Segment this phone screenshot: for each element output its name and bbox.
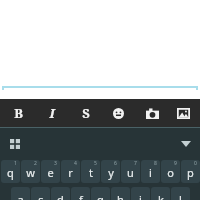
staticText: q <box>7 165 14 180</box>
staticText: 8 <box>154 160 157 167</box>
staticText: u <box>127 165 134 180</box>
button[interactable]: Take photo <box>139 100 165 126</box>
staticText: 9 <box>174 160 177 167</box>
staticText: p <box>187 165 194 180</box>
button[interactable]: k <box>151 187 170 200</box>
button[interactable]: i <box>141 160 160 183</box>
button[interactable]: g <box>91 187 110 200</box>
staticText: i <box>149 165 152 180</box>
button[interactable]: y <box>101 160 120 183</box>
staticText: 0 <box>194 160 197 167</box>
button[interactable]: More suggestions <box>173 131 199 157</box>
button[interactable]: f <box>71 187 90 200</box>
staticText: h <box>117 192 124 200</box>
staticText: k <box>158 192 164 200</box>
staticText: B <box>14 104 23 122</box>
staticText: 5 <box>94 160 97 167</box>
button[interactable]: Strikethrough <box>73 100 99 126</box>
button[interactable]: d <box>51 187 70 200</box>
button[interactable]: r <box>61 160 80 183</box>
staticText: l <box>179 192 182 200</box>
button[interactable]: l <box>171 187 190 200</box>
button[interactable]: o <box>161 160 180 183</box>
button[interactable]: Keyboard options <box>2 131 28 157</box>
staticText: f <box>79 192 83 200</box>
button[interactable]: h <box>111 187 130 200</box>
staticText: w <box>26 165 35 180</box>
button[interactable]: t <box>81 160 100 183</box>
button[interactable]: u <box>121 160 140 183</box>
button[interactable]: a <box>11 187 30 200</box>
staticText: d <box>57 192 64 200</box>
button[interactable]: j <box>131 187 150 200</box>
staticText: S <box>82 104 90 122</box>
staticText: y <box>108 165 114 180</box>
staticText: 7 <box>134 160 137 167</box>
staticText: I <box>49 104 55 122</box>
staticText: r <box>68 165 73 180</box>
staticText: o <box>167 165 174 180</box>
button[interactable]: e <box>41 160 60 183</box>
staticText: 4 <box>74 160 77 167</box>
button[interactable]: p <box>181 160 200 183</box>
staticText: j <box>139 192 142 200</box>
staticText: a <box>17 192 24 200</box>
button[interactable]: s <box>31 187 50 200</box>
staticText: s <box>38 192 44 200</box>
button[interactable]: w <box>21 160 40 183</box>
staticText: 3 <box>54 160 57 167</box>
staticText: 6 <box>114 160 117 167</box>
staticText: 1 <box>14 160 17 167</box>
staticText: g <box>97 192 104 200</box>
button[interactable]: Insert image <box>170 100 196 126</box>
staticText: e <box>47 165 54 180</box>
button[interactable]: Insert emoji <box>105 100 131 126</box>
button[interactable]: Bold <box>5 100 31 126</box>
staticText: 2 <box>34 160 37 167</box>
button[interactable]: q <box>1 160 20 183</box>
button[interactable]: Italic <box>39 100 65 126</box>
staticText: t <box>89 165 93 180</box>
